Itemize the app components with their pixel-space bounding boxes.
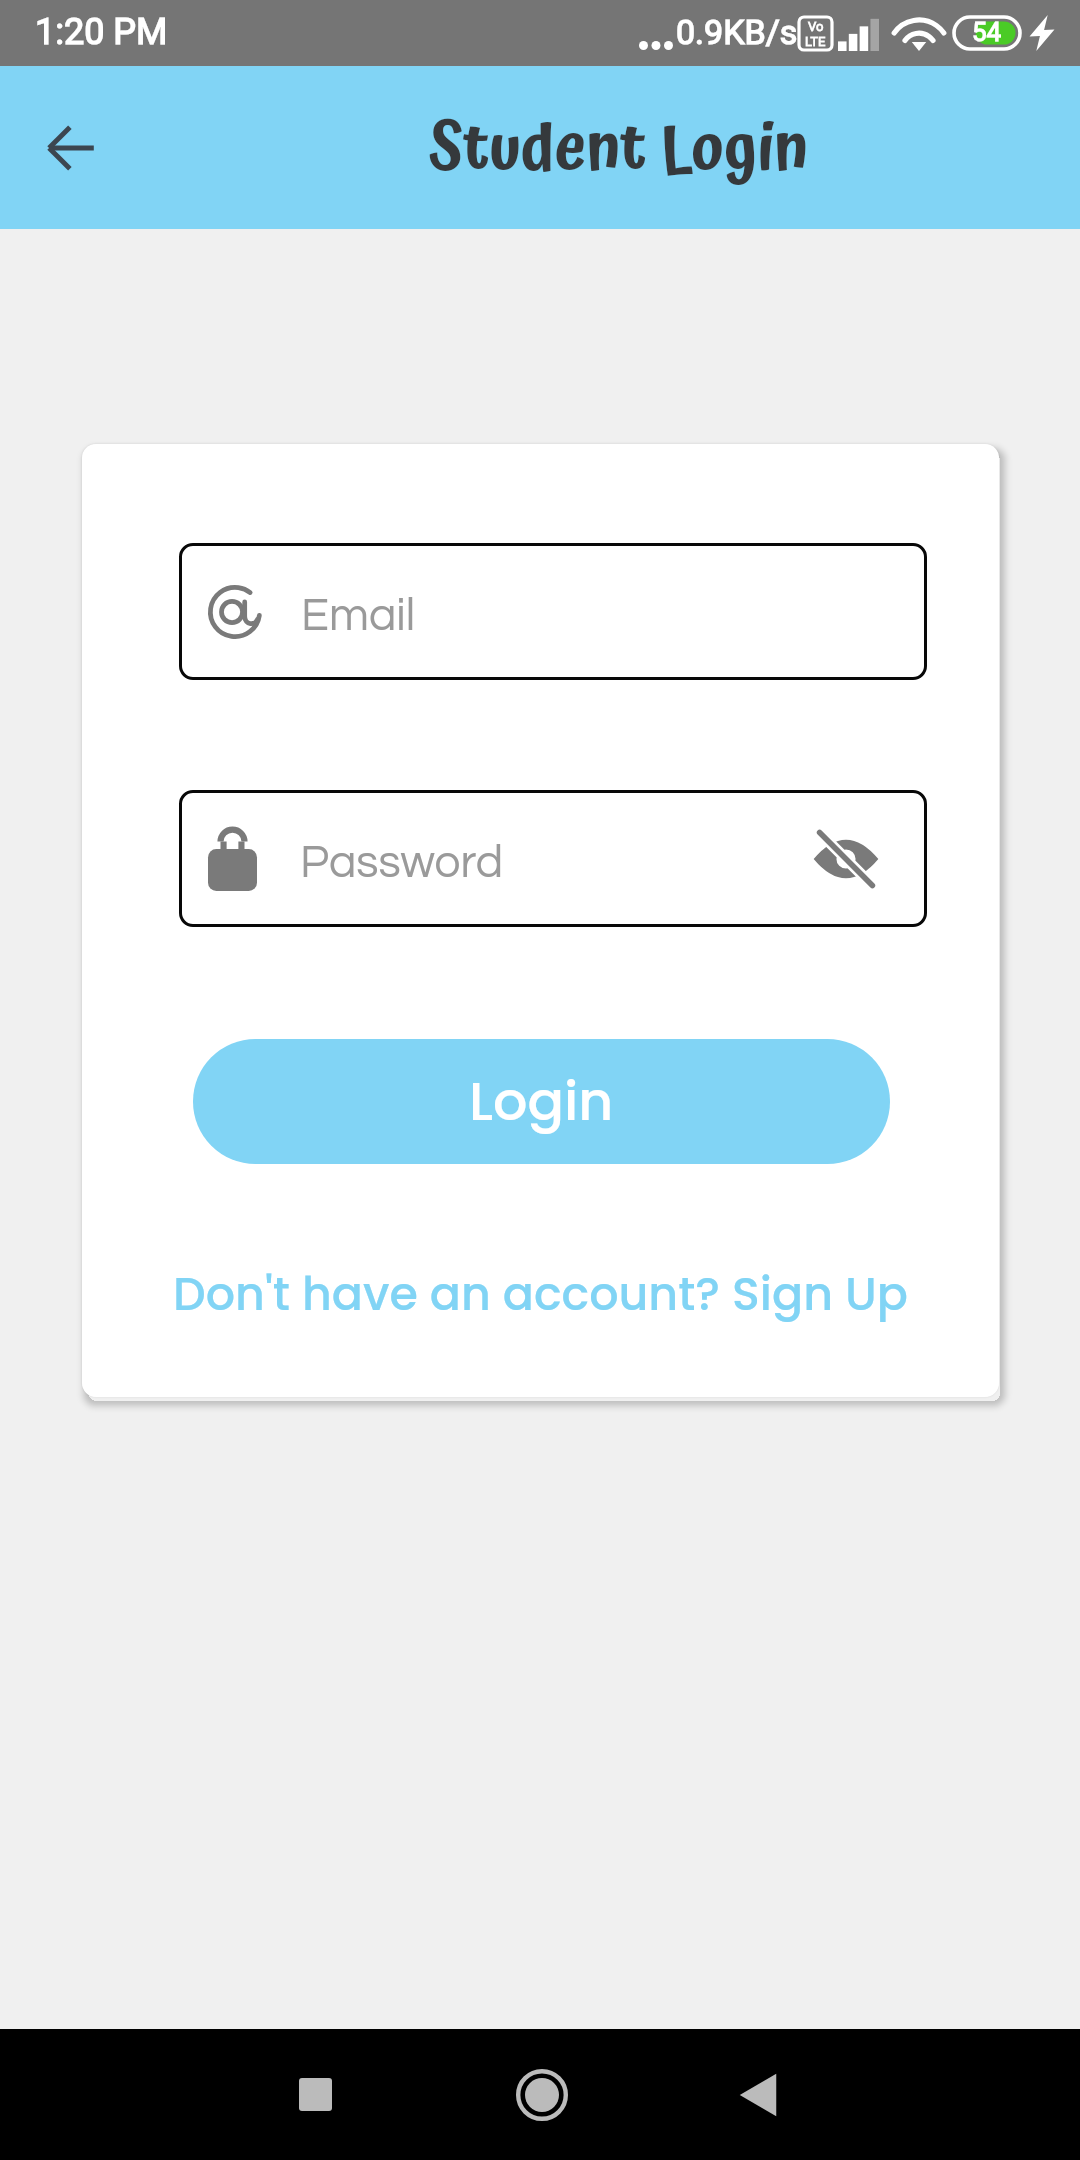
staticText: Login [469, 1063, 614, 1139]
button[interactable]: Back [35, 110, 111, 186]
button[interactable]: Recents [250, 2029, 381, 2160]
button[interactable]: Show password [806, 819, 886, 899]
staticText: Student Login [429, 99, 809, 203]
button[interactable]: Don't have an account? Sign Up [82, 1244, 999, 1344]
staticText: Password [300, 839, 806, 886]
button[interactable]: Home [476, 2029, 607, 2160]
staticText: Don't have an account? Sign Up [173, 1262, 908, 1326]
staticText: LTE [805, 34, 826, 49]
staticText: Email [301, 592, 416, 639]
staticText: Vo [808, 19, 824, 34]
button[interactable]: Password [179, 790, 927, 927]
staticText: 0.9KB/s [676, 12, 798, 52]
button[interactable]: Back [692, 2029, 823, 2160]
button[interactable]: Email [179, 543, 927, 680]
staticText: 1:20 PM [35, 11, 168, 53]
button[interactable]: Login [193, 1039, 890, 1164]
staticText: 54 [972, 17, 1002, 47]
